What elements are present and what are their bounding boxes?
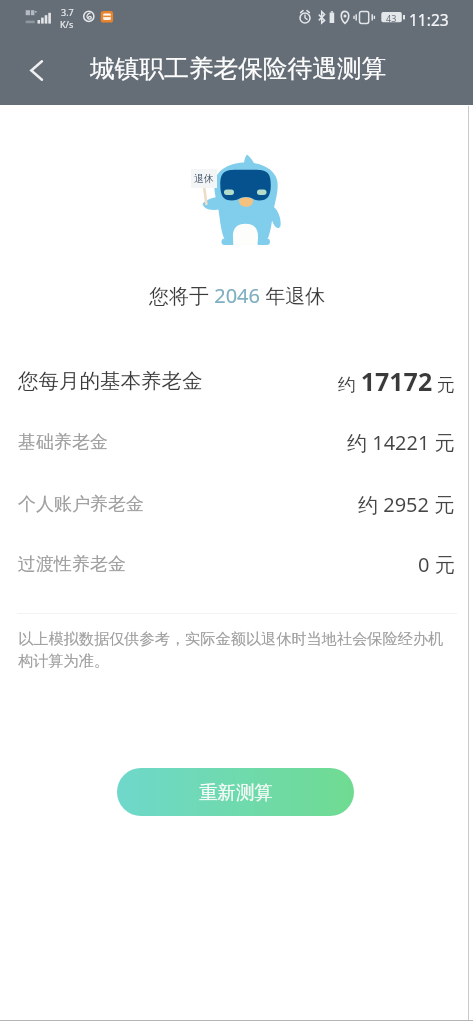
staticText: 约 14221 元 <box>347 429 455 456</box>
staticText: 约 17172 元 <box>338 364 455 398</box>
staticText: 3.7 <box>61 6 74 18</box>
staticText: 退休 <box>194 172 214 185</box>
staticText: 以上模拟数据仅供参考，实际金额以退休时当地社会保险经办机构计算为准。 <box>18 629 446 671</box>
staticText: K/s <box>60 18 74 30</box>
staticText: 约 2952 元 <box>358 491 455 518</box>
staticText: 11:23 <box>409 9 449 30</box>
staticText: 个人账户养老金 <box>18 493 144 516</box>
staticText: 重新测算 <box>199 781 273 804</box>
button[interactable]: Back <box>7 44 65 102</box>
staticText: 您每月的基本养老金 <box>18 368 203 394</box>
button[interactable]: 重新测算 <box>117 768 354 816</box>
staticText: 基础养老金 <box>18 431 108 454</box>
staticText: 过渡性养老金 <box>18 553 126 576</box>
staticText: 您将于 2046 年退休 <box>149 282 326 309</box>
staticText: 0 元 <box>418 551 455 578</box>
staticText: 城镇职工养老保险待遇测算 <box>90 53 387 84</box>
staticText: 43 <box>386 12 397 23</box>
